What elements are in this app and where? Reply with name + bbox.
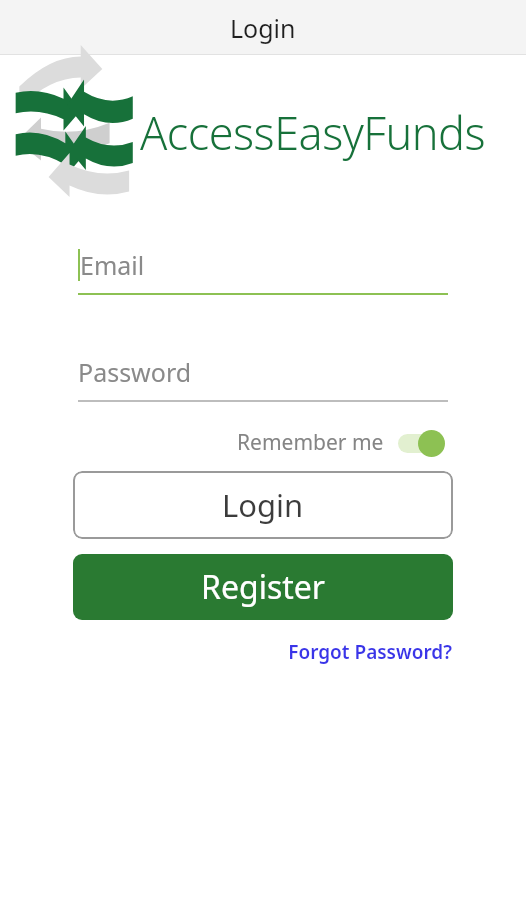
staticText: AccessEasyFunds [140, 102, 486, 163]
staticText: Login [222, 484, 304, 526]
button[interactable]: Password [78, 355, 448, 402]
staticText: Remember me [237, 428, 384, 457]
button[interactable]: Forgot Password? [284, 635, 456, 669]
other: Remember me toggle [398, 429, 446, 457]
button[interactable]: Register [73, 554, 453, 620]
button[interactable]: Remember me [233, 424, 450, 461]
staticText: Email [80, 248, 145, 282]
staticText: Login [230, 11, 296, 45]
button[interactable]: Login [73, 471, 453, 539]
staticText: Register [201, 565, 326, 609]
staticText: Password [78, 355, 192, 389]
button[interactable]: Email [78, 248, 448, 295]
